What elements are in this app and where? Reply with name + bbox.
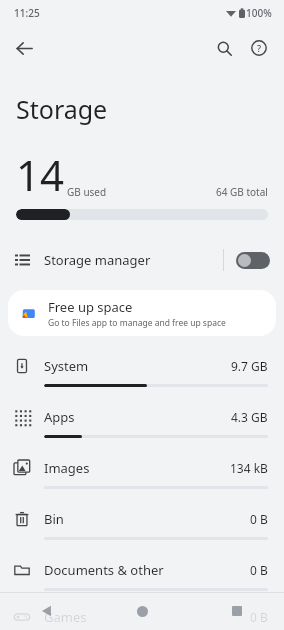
staticText: 11:25 [14, 6, 40, 20]
staticText: 100% [246, 6, 272, 20]
button[interactable]: Back [30, 594, 64, 628]
staticText: ? [257, 42, 262, 54]
button[interactable]: Help [242, 31, 276, 65]
staticText: 4.3 GB [231, 409, 268, 425]
button[interactable]: Documents & other [0, 552, 284, 603]
button[interactable]: Home [125, 594, 159, 628]
staticText: Storage [16, 92, 108, 126]
staticText: Games [44, 608, 87, 626]
staticText: 0 B [250, 562, 268, 578]
staticText: 64 GB total [216, 185, 268, 199]
staticText: Free up space [48, 298, 133, 316]
staticText: Images [44, 459, 90, 477]
button[interactable]: System [0, 348, 284, 399]
button[interactable]: Apps [0, 399, 284, 450]
button[interactable]: Bin [0, 501, 284, 552]
button[interactable]: Games [0, 603, 284, 630]
button[interactable]: Storage manager toggle [236, 252, 270, 269]
staticText: 14 [16, 146, 65, 203]
staticText: 134 kB [230, 460, 268, 476]
button[interactable]: Free up space [8, 290, 276, 336]
staticText: 9.7 GB [231, 358, 268, 374]
button[interactable]: Search [207, 31, 241, 65]
button[interactable]: Navigate up [6, 30, 42, 66]
staticText: Bin [44, 510, 64, 528]
staticText: Go to Files app to manage and free up sp… [48, 317, 226, 329]
staticText: Documents & other [44, 561, 164, 579]
button[interactable]: Recent apps [220, 594, 254, 628]
button[interactable]: Storage manager [0, 238, 284, 282]
button[interactable]: Images [0, 450, 284, 501]
staticText: Storage manager [44, 251, 151, 269]
staticText: 0 B [250, 609, 268, 625]
staticText: GB used [67, 185, 107, 199]
staticText: System [44, 357, 89, 375]
staticText: 0 B [250, 511, 268, 527]
staticText: Apps [44, 408, 75, 426]
